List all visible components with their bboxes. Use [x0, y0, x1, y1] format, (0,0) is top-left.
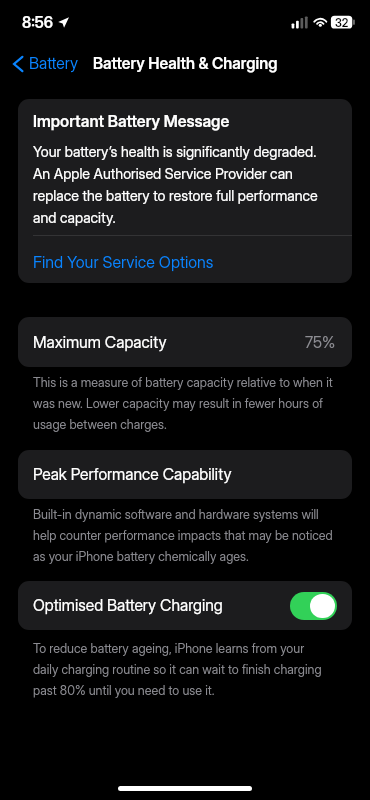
staticText: This is a measure of battery capacity re…	[33, 370, 333, 433]
staticText: Battery Health & Charging	[93, 54, 278, 73]
staticText: Important Battery Message	[33, 110, 230, 131]
button[interactable]: Find Your Service Options	[18, 236, 352, 283]
staticText: Maximum Capacity	[33, 333, 167, 352]
staticText: Built-in dynamic software and hardware s…	[33, 502, 333, 565]
staticText: Battery	[29, 54, 79, 73]
button[interactable]: Maximum Capacity	[18, 317, 352, 367]
button[interactable]: Back to Battery	[0, 47, 89, 80]
staticText: Optimised Battery Charging	[33, 596, 223, 615]
button[interactable]: Optimised Battery Charging, on	[290, 592, 337, 620]
staticText: 32	[335, 16, 349, 30]
staticText: 75%	[305, 333, 336, 352]
staticText: Find Your Service Options	[33, 252, 214, 271]
staticText: 8:56	[22, 13, 54, 31]
staticText: Peak Performance Capability	[33, 465, 232, 484]
staticText: To reduce battery ageing, iPhone learns …	[33, 636, 322, 699]
button[interactable]: Peak Performance Capability	[18, 450, 352, 499]
staticText: Your battery’s health is significantly d…	[33, 139, 318, 227]
